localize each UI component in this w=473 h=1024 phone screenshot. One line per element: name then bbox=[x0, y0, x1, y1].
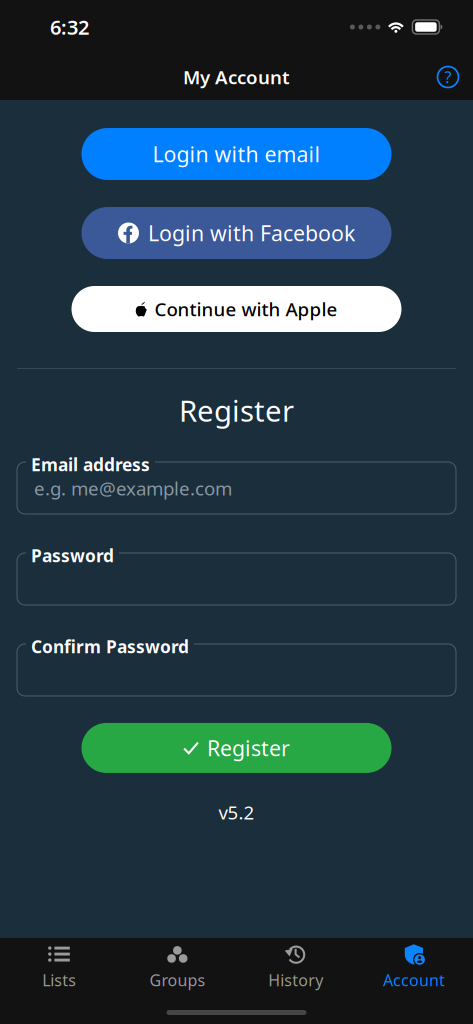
staticText: Confirm Password bbox=[31, 635, 189, 658]
staticText: Continue with Apple bbox=[154, 297, 337, 321]
staticText: Groups bbox=[149, 969, 205, 991]
staticText: 6:32 bbox=[50, 14, 89, 40]
button[interactable]: Groups bbox=[118, 936, 236, 996]
staticText: Login with email bbox=[152, 140, 320, 168]
staticText: v5.2 bbox=[218, 800, 254, 825]
button[interactable]: Continue with Apple bbox=[71, 286, 401, 332]
button[interactable]: Lists bbox=[0, 936, 118, 996]
staticText: History bbox=[268, 969, 323, 991]
button[interactable]: Register bbox=[81, 723, 391, 773]
staticText: Login with Facebook bbox=[148, 219, 355, 247]
staticText: Password bbox=[31, 544, 114, 567]
button[interactable]: Login with Facebook bbox=[81, 207, 391, 259]
staticText: e.g. me@example.com bbox=[34, 476, 232, 501]
staticText: Email address bbox=[31, 453, 150, 476]
staticText: Lists bbox=[42, 969, 76, 991]
button[interactable]: Help bbox=[423, 56, 473, 98]
staticText: Register bbox=[179, 391, 294, 430]
staticText: Account bbox=[383, 969, 445, 991]
button[interactable]: History bbox=[236, 936, 355, 996]
button[interactable]: Login with email bbox=[81, 128, 391, 180]
button[interactable]: Account bbox=[355, 936, 473, 996]
staticText: ? bbox=[444, 66, 451, 88]
staticText: Register bbox=[207, 734, 290, 762]
staticText: My Account bbox=[183, 65, 290, 89]
